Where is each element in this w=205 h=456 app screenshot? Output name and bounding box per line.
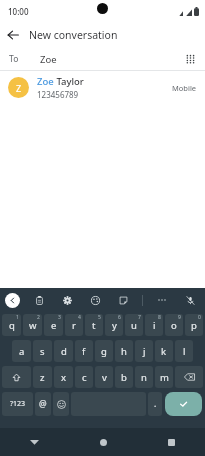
- button[interactable]: Back: [0, 22, 26, 48]
- button[interactable]: b: [115, 366, 133, 388]
- button[interactable]: Home: [69, 428, 137, 456]
- button[interactable]: k: [155, 340, 173, 362]
- staticText: .: [154, 398, 157, 410]
- staticText: t: [92, 319, 96, 332]
- button[interactable]: e: [44, 314, 63, 336]
- staticText: 9: [178, 314, 181, 321]
- staticText: b: [121, 371, 127, 384]
- staticText: f: [82, 345, 86, 358]
- staticText: q: [9, 319, 15, 332]
- staticText: n: [141, 371, 147, 384]
- staticText: Mobile: [172, 83, 197, 93]
- staticText: g: [101, 345, 107, 358]
- staticText: 8: [158, 314, 161, 321]
- staticText: 7: [138, 314, 141, 321]
- staticText: 3: [58, 314, 61, 321]
- staticText: s: [40, 345, 45, 358]
- button[interactable]: Theme: [87, 292, 103, 308]
- button[interactable]: Enter: [165, 392, 202, 416]
- staticText: 6: [118, 314, 121, 321]
- staticText: v: [102, 371, 107, 384]
- staticText: j: [143, 345, 146, 358]
- staticText: h: [121, 345, 127, 358]
- button[interactable]: Expand toolbar: [5, 293, 20, 308]
- staticText: a: [19, 345, 25, 358]
- staticText: m: [160, 371, 169, 384]
- button[interactable]: Z: [0, 71, 205, 104]
- staticText: x: [61, 371, 67, 384]
- button[interactable]: Back: [0, 428, 69, 456]
- button[interactable]: Recent apps: [137, 428, 205, 456]
- staticText: 123456789: [37, 89, 79, 100]
- button[interactable]: s: [33, 340, 52, 362]
- button[interactable]: Stickers: [115, 292, 131, 308]
- button[interactable]: v: [95, 366, 113, 388]
- staticText: 0: [198, 314, 201, 321]
- button[interactable]: x: [54, 366, 73, 388]
- staticText: c: [82, 371, 87, 384]
- staticText: y: [112, 319, 117, 332]
- button[interactable]: t: [85, 314, 103, 336]
- button[interactable]: n: [135, 366, 153, 388]
- staticText: w: [29, 319, 37, 332]
- button[interactable]: a: [12, 340, 31, 362]
- button[interactable]: d: [54, 340, 73, 362]
- staticText: Taylor: [54, 75, 84, 88]
- button[interactable]: More options: [154, 292, 170, 308]
- button[interactable]: Backspace: [175, 366, 203, 388]
- button[interactable]: r: [65, 314, 83, 336]
- button[interactable]: m: [155, 366, 173, 388]
- staticText: p: [191, 319, 197, 332]
- button[interactable]: o: [165, 314, 183, 336]
- button[interactable]: z: [33, 366, 52, 388]
- staticText: e: [51, 319, 57, 332]
- button[interactable]: l: [175, 340, 193, 362]
- button[interactable]: h: [115, 340, 133, 362]
- staticText: o: [171, 319, 177, 332]
- staticText: Z: [16, 82, 22, 94]
- staticText: z: [40, 371, 45, 384]
- staticText: l: [183, 345, 186, 358]
- button[interactable]: Settings: [59, 292, 75, 308]
- button[interactable]: Dialpad: [180, 49, 200, 69]
- button[interactable]: i: [145, 314, 163, 336]
- button[interactable]: Emoji: [53, 392, 69, 416]
- staticText: 10:00: [8, 6, 29, 17]
- button[interactable]: Clipboard: [31, 292, 47, 308]
- staticText: k: [161, 345, 167, 358]
- button[interactable]: y: [105, 314, 123, 336]
- staticText: d: [61, 345, 67, 358]
- staticText: Zoe: [37, 75, 54, 88]
- staticText: r: [72, 319, 76, 332]
- button[interactable]: q: [2, 314, 21, 336]
- staticText: 4: [78, 314, 81, 321]
- button[interactable]: p: [185, 314, 203, 336]
- button[interactable]: .: [148, 392, 162, 416]
- staticText: @: [39, 398, 47, 410]
- button[interactable]: c: [75, 366, 93, 388]
- button[interactable]: Shift: [2, 366, 31, 388]
- staticText: 1: [16, 314, 19, 321]
- button[interactable]: g: [95, 340, 113, 362]
- staticText: 2: [37, 314, 40, 321]
- staticText: New conversation: [29, 28, 118, 42]
- button[interactable]: @: [35, 392, 51, 416]
- button[interactable]: w: [23, 314, 42, 336]
- staticText: i: [153, 319, 156, 332]
- button[interactable]: Voice input off: [182, 292, 198, 308]
- staticText: Zoe: [40, 53, 57, 66]
- staticText: To: [9, 53, 19, 65]
- staticText: ?123: [10, 399, 26, 409]
- button[interactable]: j: [135, 340, 153, 362]
- staticText: u: [131, 319, 137, 332]
- button[interactable]: f: [75, 340, 93, 362]
- button[interactable]: ?123: [2, 392, 33, 416]
- button[interactable]: u: [125, 314, 143, 336]
- staticText: 5: [98, 314, 101, 321]
